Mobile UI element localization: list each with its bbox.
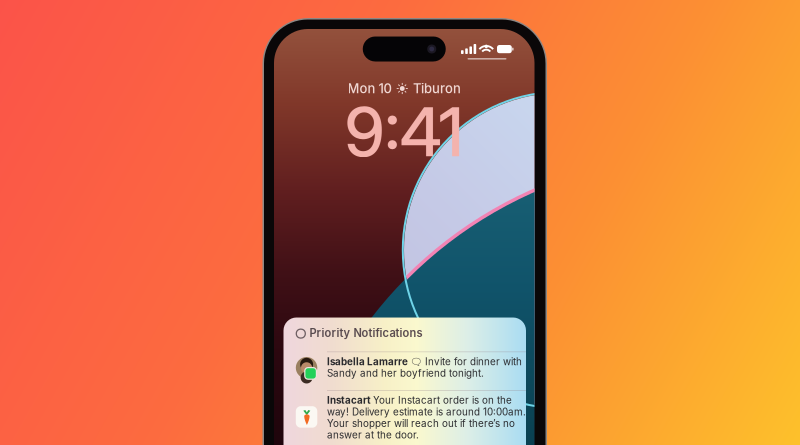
staticText: Priority Notifications (309, 326, 422, 340)
staticText: Mon 10 (347, 81, 391, 96)
button[interactable]: Isabella Lamarre 🗨 Invite for dinner wit… (283, 352, 526, 390)
button[interactable]: Instacart Your Instacart order is on the… (283, 391, 526, 445)
staticText: 9:41 (345, 92, 464, 172)
button[interactable]: Priority Notifications (309, 325, 469, 340)
staticText: Instacart Your Instacart order is on the… (327, 394, 526, 441)
staticText: Tiburon (413, 81, 461, 96)
staticText: Isabella Lamarre 🗨 Invite for dinner wit… (327, 356, 522, 379)
